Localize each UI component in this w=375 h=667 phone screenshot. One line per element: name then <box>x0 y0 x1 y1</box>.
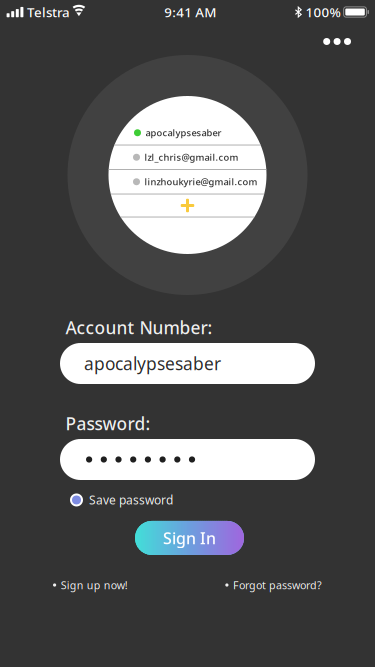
button[interactable]: apocalypsesaber <box>108 121 266 144</box>
button[interactable]: Sign up now! <box>53 575 128 595</box>
staticText: apocalypsesaber <box>145 127 221 139</box>
staticText: lzl_chris@gmail.com <box>144 151 238 163</box>
staticText: Forgot password? <box>233 578 322 592</box>
button[interactable]: lzl_chris@gmail.com <box>108 145 266 169</box>
button[interactable]: Save password <box>70 490 173 510</box>
button[interactable] <box>60 439 315 480</box>
staticText: Telstra <box>27 3 70 21</box>
staticText: Account Number: <box>65 316 212 339</box>
staticText: 100% <box>306 3 341 21</box>
button[interactable]: Add account <box>108 194 266 216</box>
staticText: apocalypsesaber <box>84 352 221 375</box>
staticText: linzhoukyrie@gmail.com <box>144 176 257 188</box>
staticText: Sign up now! <box>61 578 128 592</box>
staticText: Save password <box>89 492 173 508</box>
button[interactable]: Forgot password? <box>225 575 322 595</box>
button[interactable]: linzhoukyrie@gmail.com <box>108 170 266 193</box>
staticText: Password: <box>65 412 150 435</box>
staticText: 9:41 AM <box>164 3 216 21</box>
button[interactable]: More options <box>311 22 361 52</box>
staticText: Sign In <box>163 527 216 548</box>
button[interactable]: apocalypsesaber <box>60 343 315 384</box>
button[interactable]: Sign In <box>133 520 242 554</box>
